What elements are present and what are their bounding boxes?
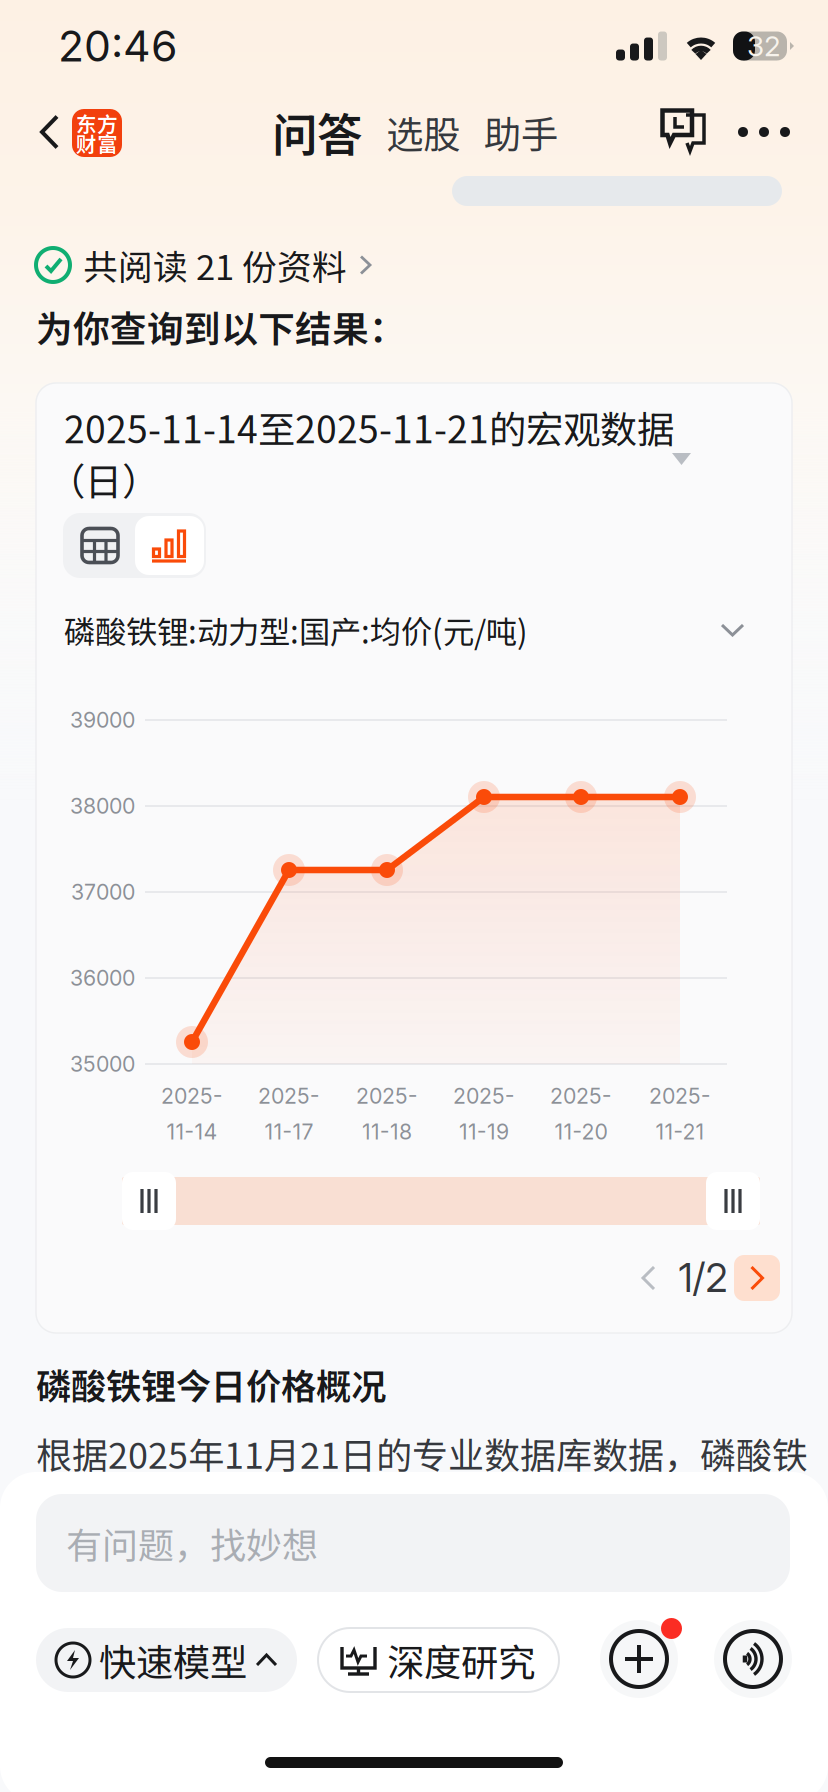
staticText: 35000	[70, 1051, 135, 1077]
button[interactable]: 添加	[600, 1620, 678, 1698]
staticText: 问答	[272, 99, 362, 165]
button[interactable]: 图表视图	[135, 516, 204, 575]
staticText: 2025-	[161, 1083, 223, 1109]
staticText: 东方	[76, 108, 118, 138]
staticText: 有问题，找妙想	[66, 1517, 318, 1569]
staticText: 1/2	[678, 1255, 727, 1301]
staticText: 32	[747, 29, 781, 63]
staticText: 36000	[70, 965, 135, 991]
button[interactable]: 共阅读 21 份资料	[0, 236, 828, 294]
staticText: 根据2025年11月21日的专业数据库数据，磷酸铁	[36, 1427, 808, 1479]
staticText: 助手	[484, 105, 558, 159]
button[interactable]: 历史记录	[652, 100, 716, 164]
button[interactable]: 深度研究	[318, 1628, 559, 1692]
staticText: 37000	[71, 879, 135, 905]
staticText: 2025-	[258, 1083, 320, 1109]
staticText: 11-18	[362, 1119, 412, 1145]
staticText: 11-20	[554, 1119, 607, 1145]
button[interactable]: 语音	[714, 1620, 792, 1698]
staticText: 38000	[70, 793, 135, 819]
button[interactable]: 选股	[378, 96, 468, 168]
button[interactable]: 东方财富	[72, 109, 122, 157]
button[interactable]: 助手	[476, 96, 566, 168]
button[interactable]: 有问题，找妙想	[36, 1494, 790, 1592]
staticText: 11-21	[655, 1119, 704, 1145]
staticText: 2025-	[453, 1083, 515, 1109]
button[interactable]: 问答	[262, 96, 372, 168]
staticText: 20:46	[58, 20, 177, 72]
staticText: 2025-	[649, 1083, 711, 1109]
staticText: 11-17	[264, 1119, 313, 1145]
staticText: 为你查询到以下结果：	[36, 300, 406, 353]
staticText: 11-19	[459, 1119, 509, 1145]
staticText: （日）	[48, 452, 159, 506]
button[interactable]: 返回	[22, 96, 78, 168]
button[interactable]: 快速模型	[36, 1628, 297, 1692]
button[interactable]: 磷酸铁锂:动力型:国产:均价(元/吨)	[36, 595, 792, 665]
button[interactable]: 下一页	[734, 1255, 780, 1301]
staticText: 磷酸铁锂:动力型:国产:均价(元/吨)	[64, 607, 528, 653]
staticText: 11-14	[166, 1119, 217, 1145]
staticText: 快速模型	[99, 1633, 247, 1687]
staticText: 2025-11-14至2025-11-21的宏观数据	[64, 400, 674, 454]
staticText: 2025-	[550, 1083, 612, 1109]
button[interactable]: 更多	[732, 100, 796, 164]
staticText: 选股	[386, 105, 460, 159]
button[interactable]: 表格视图	[65, 515, 135, 576]
staticText: 深度研究	[387, 1633, 535, 1687]
staticText: 39000	[70, 707, 135, 733]
staticText: 2025-	[356, 1083, 418, 1109]
button[interactable]: 上一页	[626, 1255, 672, 1301]
staticText: 磷酸铁锂今日价格概况	[36, 1358, 386, 1410]
staticText: 财富	[76, 128, 118, 158]
staticText: 共阅读 21 份资料	[83, 240, 347, 290]
